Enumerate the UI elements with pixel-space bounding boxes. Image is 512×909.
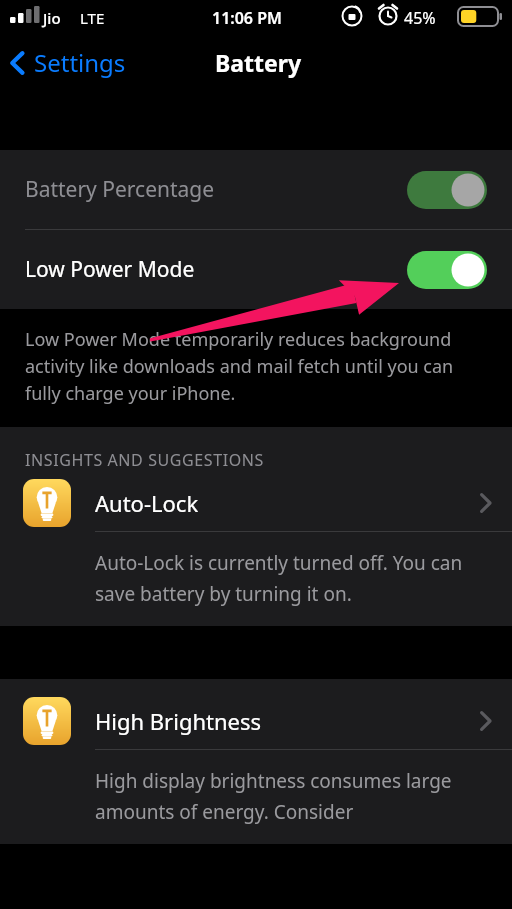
staticText: Battery (215, 47, 302, 78)
staticText: 45% (404, 7, 436, 29)
staticText: Settings (34, 46, 126, 79)
staticText: High Brightness (95, 706, 479, 736)
staticText: Battery Percentage (25, 175, 407, 204)
staticText: LTE (80, 8, 105, 28)
staticText: Jio (43, 8, 61, 28)
staticText: INSIGHTS AND SUGGESTIONS (25, 449, 264, 471)
other: Open High Brightness (479, 710, 492, 732)
staticText: Auto-Lock (95, 488, 479, 518)
button[interactable]: Low Power Mode (0, 230, 512, 309)
staticText: Auto-Lock is currently turned off. You c… (95, 550, 482, 606)
button[interactable]: Battery Percentage (0, 150, 512, 229)
staticText: 11:06 PM (212, 7, 282, 29)
staticText: High display brightness consumes large a… (95, 768, 482, 824)
button[interactable]: High Brightness (0, 693, 512, 749)
button[interactable]: Settings (0, 40, 138, 85)
staticText: Low Power Mode temporarily reduces backg… (25, 327, 462, 405)
button[interactable]: Auto-Lock (0, 475, 512, 531)
other: Open Auto-Lock (479, 492, 492, 514)
staticText: Low Power Mode (25, 255, 407, 284)
